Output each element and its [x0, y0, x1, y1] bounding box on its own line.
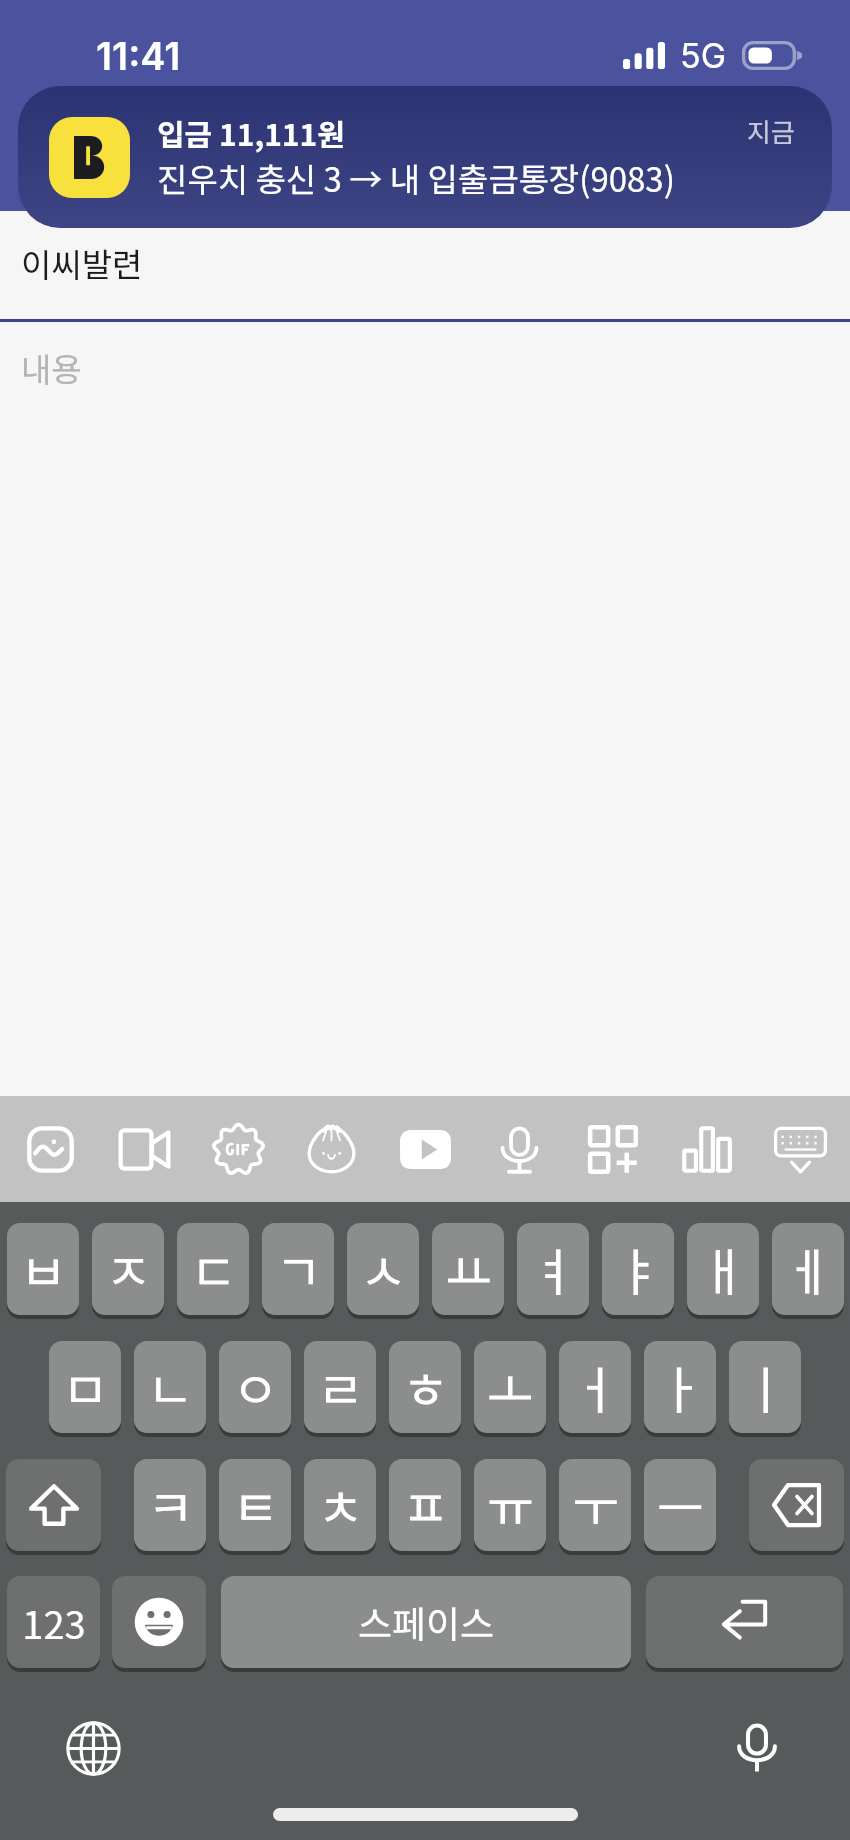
staticText: 입금 11,111원 [157, 111, 345, 154]
staticText: ㅡ [657, 1468, 704, 1542]
button[interactable]: ㅍ [389, 1459, 461, 1551]
staticText: ㄱ [275, 1232, 322, 1306]
button[interactable]: ㅐ [687, 1223, 759, 1315]
button[interactable]: Change keyboard [61, 1716, 125, 1780]
button[interactable]: ㅊ [304, 1459, 376, 1551]
button[interactable]: ㅔ [772, 1223, 844, 1315]
button[interactable]: Hide keyboard [764, 1109, 836, 1189]
staticText: ㅂ [20, 1232, 67, 1306]
button[interactable]: ㅇ [219, 1341, 291, 1433]
button[interactable]: ㅈ [92, 1223, 164, 1315]
staticText: ㅑ [615, 1232, 662, 1306]
button[interactable]: ㅌ [219, 1459, 291, 1551]
button[interactable]: ㅓ [559, 1341, 631, 1433]
button[interactable]: Voice message [483, 1109, 555, 1189]
button[interactable]: ㅠ [474, 1459, 546, 1551]
button[interactable]: Shift [6, 1459, 101, 1551]
button[interactable]: 스페이스 [221, 1576, 631, 1668]
staticText: 123 [22, 1595, 86, 1650]
button[interactable]: ㅑ [602, 1223, 674, 1315]
staticText: ㅐ [700, 1232, 747, 1306]
staticText: ㅠ [487, 1468, 534, 1542]
button[interactable]: ㅁ [49, 1341, 121, 1433]
button[interactable]: ㅣ [729, 1341, 801, 1433]
button[interactable]: ㅅ [347, 1223, 419, 1315]
button[interactable]: 123 [7, 1576, 100, 1668]
staticText: ㅗ [487, 1350, 534, 1424]
button[interactable]: ㅋ [134, 1459, 206, 1551]
button[interactable]: 입금 11,111원 [18, 86, 832, 228]
button[interactable]: Apps [577, 1109, 649, 1189]
button[interactable]: ㅂ [7, 1223, 79, 1315]
staticText: ㅜ [572, 1468, 619, 1542]
button[interactable]: ㄴ [134, 1341, 206, 1433]
staticText: ㅔ [785, 1232, 832, 1306]
staticText: ㅍ [402, 1468, 449, 1542]
staticText: ㄷ [190, 1232, 237, 1306]
staticText: ㅓ [572, 1350, 619, 1424]
staticText: 진우치 충신 3 → 내 입출금통장(9083) [157, 154, 675, 202]
staticText: ㅛ [445, 1232, 492, 1306]
button[interactable]: ㄹ [304, 1341, 376, 1433]
button[interactable]: Return [646, 1576, 843, 1668]
button[interactable]: ㄱ [262, 1223, 334, 1315]
staticText: 스페이스 [358, 1595, 495, 1649]
staticText: ㅏ [657, 1350, 704, 1424]
button[interactable]: YouTube [389, 1109, 461, 1189]
button[interactable]: ㅕ [517, 1223, 589, 1315]
staticText: ㅁ [62, 1350, 109, 1424]
button[interactable]: Sticker [295, 1109, 367, 1189]
staticText: ㅋ [147, 1468, 194, 1542]
staticText: ㅊ [317, 1468, 364, 1542]
staticText: ㅎ [402, 1350, 449, 1424]
staticText: ㅕ [530, 1232, 577, 1306]
button[interactable]: Photos [14, 1109, 86, 1189]
button[interactable]: ㄷ [177, 1223, 249, 1315]
button[interactable]: GIF [202, 1109, 274, 1189]
button[interactable]: Emoji [112, 1576, 206, 1668]
staticText: 5G [680, 35, 727, 76]
button[interactable]: ㅛ [432, 1223, 504, 1315]
button[interactable]: Backspace [749, 1459, 844, 1551]
staticText: 이씨발련 [21, 239, 143, 287]
staticText: ㅈ [105, 1232, 152, 1306]
button[interactable]: ㅎ [389, 1341, 461, 1433]
staticText: 내용 [21, 344, 82, 392]
button[interactable]: Dictation [725, 1716, 789, 1780]
button[interactable]: ㅏ [644, 1341, 716, 1433]
staticText: ㄴ [147, 1350, 194, 1424]
staticText: ㅅ [360, 1232, 407, 1306]
staticText: ㄹ [317, 1350, 364, 1424]
button[interactable]: Video [108, 1109, 180, 1189]
button[interactable]: ㅡ [644, 1459, 716, 1551]
button[interactable]: Poll [670, 1109, 742, 1189]
staticText: ㅌ [232, 1468, 279, 1542]
staticText: ㅣ [742, 1350, 789, 1424]
button[interactable]: ㅗ [474, 1341, 546, 1433]
button[interactable]: ㅜ [559, 1459, 631, 1551]
staticText: 11:41 [96, 33, 181, 79]
staticText: ㅇ [232, 1350, 279, 1424]
staticText: 지금 [747, 112, 795, 150]
